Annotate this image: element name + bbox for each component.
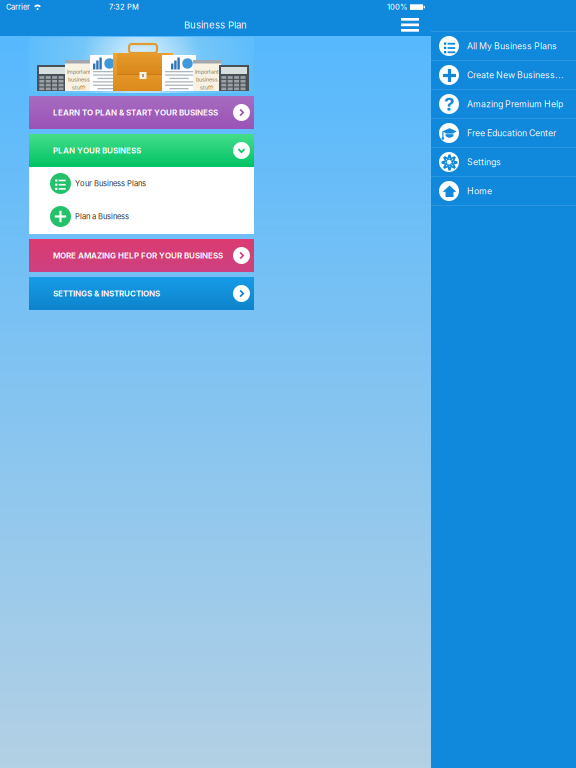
staticText: ?	[444, 93, 454, 115]
staticText: Business Plan	[184, 19, 247, 31]
staticText: Important	[195, 68, 219, 75]
staticText: All My Business Plans	[467, 41, 557, 51]
button[interactable]: Home	[431, 177, 576, 206]
staticText: Plan a Business	[75, 212, 129, 221]
staticText: Important	[67, 68, 91, 75]
staticText: MORE AMAZING HELP FOR YOUR BUSINESS	[53, 251, 223, 260]
staticText: business	[68, 76, 90, 83]
button[interactable]: Your Business Plans	[29, 167, 254, 200]
button[interactable]: Settings	[431, 148, 576, 177]
staticText: Home	[467, 186, 492, 196]
button[interactable]: MORE AMAZING HELP FOR YOUR BUSINESS	[29, 239, 254, 272]
staticText: Settings	[467, 157, 501, 167]
staticText: stuff!	[200, 84, 214, 91]
button[interactable]: Create New Business...	[431, 61, 576, 90]
staticText: stuff!	[72, 84, 86, 91]
staticText: Free Education Center	[467, 128, 556, 138]
staticText: SETTINGS & INSTRUCTIONS	[53, 289, 160, 298]
staticText: business	[196, 76, 218, 83]
staticText: Carrier	[6, 2, 30, 11]
button[interactable]: LEARN TO PLAN & START YOUR BUSINESS	[29, 96, 254, 129]
button[interactable]: SETTINGS & INSTRUCTIONS	[29, 277, 254, 310]
button[interactable]: Menu	[389, 14, 431, 36]
staticText: 7:32 PM	[109, 2, 139, 11]
staticText: LEARN TO PLAN & START YOUR BUSINESS	[53, 108, 218, 117]
staticText: Your Business Plans	[75, 179, 146, 188]
staticText: Create New Business...	[467, 70, 564, 80]
staticText: PLAN YOUR BUSINESS	[53, 146, 141, 155]
staticText: 100%	[387, 2, 407, 11]
button[interactable]: All My Business Plans	[431, 32, 576, 61]
button[interactable]: Free Education Center	[431, 119, 576, 148]
button[interactable]: ?	[431, 90, 576, 119]
button[interactable]: PLAN YOUR BUSINESS	[29, 134, 254, 167]
button[interactable]: Plan a Business	[29, 200, 254, 233]
staticText: Amazing Premium Help	[467, 99, 563, 109]
